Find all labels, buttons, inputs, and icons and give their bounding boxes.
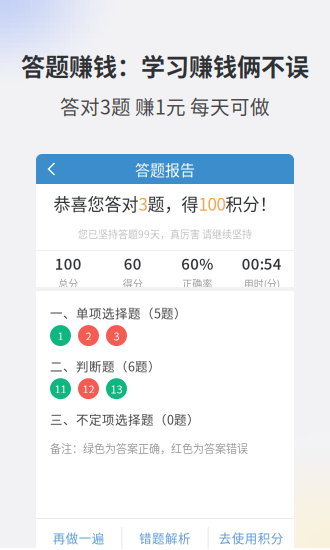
staticText: 2: [85, 328, 91, 343]
staticText: 用时(分): [244, 276, 280, 291]
staticText: 答对3题 赚1元 每天可做: [60, 92, 270, 120]
staticText: 三、不定项选择题（0题）: [50, 410, 200, 428]
button[interactable]: 再做一遍: [36, 519, 121, 550]
staticText: 恭喜您答对: [53, 191, 138, 216]
staticText: 3: [113, 328, 119, 343]
staticText: 12: [82, 381, 94, 397]
staticText: 得分: [123, 276, 143, 291]
button[interactable]: 去使用积分: [209, 519, 294, 550]
staticText: 60%: [181, 252, 213, 274]
staticText: 积分！: [225, 191, 276, 216]
staticText: 一、单项选择题（5题）: [50, 304, 187, 322]
staticText: 答题报告: [135, 158, 195, 180]
staticText: 总分: [58, 276, 78, 291]
staticText: 1: [57, 328, 63, 343]
button[interactable]: 返回: [36, 154, 66, 184]
staticText: 60: [124, 252, 142, 274]
staticText: 再做一遍: [53, 529, 105, 547]
staticText: 11: [54, 381, 66, 397]
staticText: 去使用积分: [219, 529, 284, 547]
staticText: 正确率: [182, 276, 212, 291]
staticText: 3: [138, 191, 147, 216]
staticText: 答题赚钱：学习赚钱俩不误: [21, 48, 309, 83]
button[interactable]: 错题解析: [122, 519, 208, 550]
staticText: 备注：绿色为答案正确，红色为答案错误: [50, 440, 248, 456]
staticText: 二、判断题（6题）: [50, 357, 161, 375]
staticText: 错题解析: [139, 529, 191, 547]
staticText: 13: [110, 381, 122, 397]
staticText: 您已坚持答题99天，真厉害 请继续坚持: [78, 227, 252, 241]
staticText: 00:54: [242, 252, 282, 274]
staticText: 100: [198, 191, 225, 216]
staticText: 100: [55, 252, 82, 274]
staticText: 题，得: [147, 191, 198, 216]
